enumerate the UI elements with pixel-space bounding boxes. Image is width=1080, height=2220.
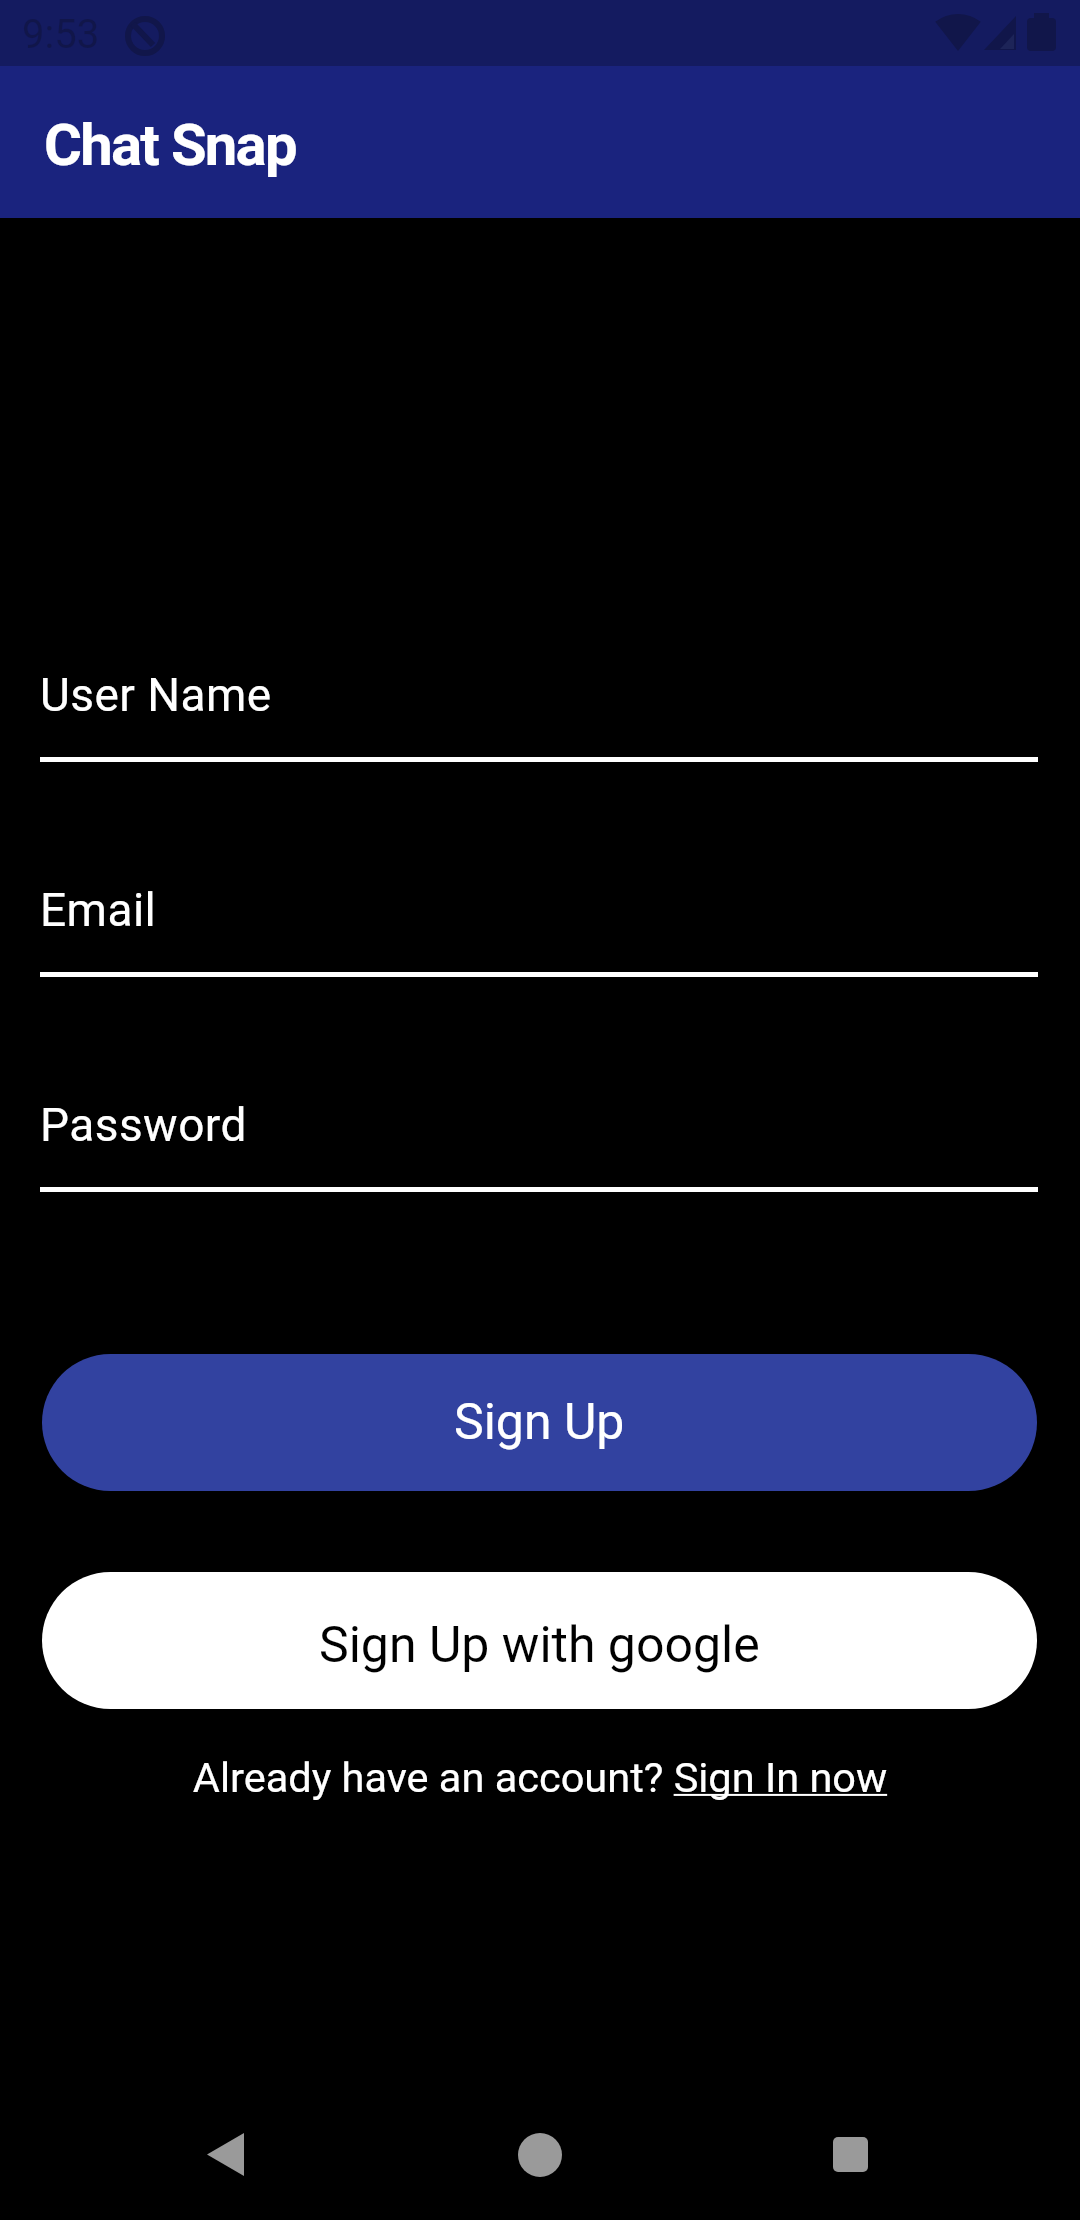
staticText: Already have an account? Sign In now [0,1753,1080,1802]
button[interactable] [187,2114,267,2194]
button[interactable]: Sign Up with google [42,1572,1037,1709]
button[interactable] [810,2114,890,2194]
staticText: User Name [40,668,272,722]
staticText: 9:53 [22,11,100,58]
staticText: Sign Up [454,1393,625,1452]
staticText: Email [40,883,157,937]
button[interactable] [500,2114,580,2194]
staticText: Sign Up with google [319,1616,760,1675]
button[interactable]: User Name [40,640,1038,765]
button[interactable]: Password [40,1070,1038,1195]
staticText: Chat Snap [44,111,296,179]
button[interactable]: Already have an account? Sign In now [0,1753,1080,1813]
button[interactable]: Sign Up [42,1354,1037,1491]
button[interactable]: Email [40,855,1038,980]
staticText: Password [40,1098,247,1152]
